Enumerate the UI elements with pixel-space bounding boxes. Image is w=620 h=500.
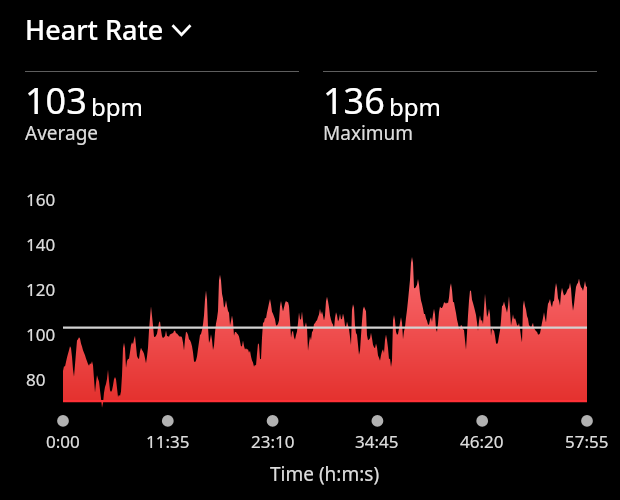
- staticText: Time (h:m:s): [270, 461, 380, 487]
- staticText: bpm: [91, 90, 143, 123]
- staticText: Maximum: [323, 120, 414, 146]
- staticText: 103: [25, 76, 87, 125]
- staticText: 80: [26, 368, 46, 391]
- staticText: 0:00: [46, 430, 80, 453]
- staticText: 100: [26, 323, 56, 346]
- staticText: Heart Rate: [25, 11, 164, 48]
- staticText: 34:45: [355, 430, 399, 453]
- button[interactable]: 103: [25, 76, 299, 146]
- staticText: 140: [26, 233, 56, 256]
- staticText: bpm: [389, 90, 441, 123]
- button[interactable]: Heart rate chart: [63, 193, 587, 402]
- staticText: 120: [26, 278, 56, 301]
- other: Expand: [171, 18, 192, 42]
- staticText: 23:10: [251, 430, 295, 453]
- staticText: 11:35: [146, 430, 190, 453]
- staticText: Average: [25, 120, 99, 146]
- staticText: 160: [26, 188, 56, 211]
- staticText: 46:20: [460, 430, 504, 453]
- button[interactable]: 136: [323, 76, 597, 146]
- button[interactable]: Heart Rate: [25, 11, 192, 48]
- staticText: 57:55: [565, 430, 609, 453]
- staticText: 136: [323, 76, 385, 125]
